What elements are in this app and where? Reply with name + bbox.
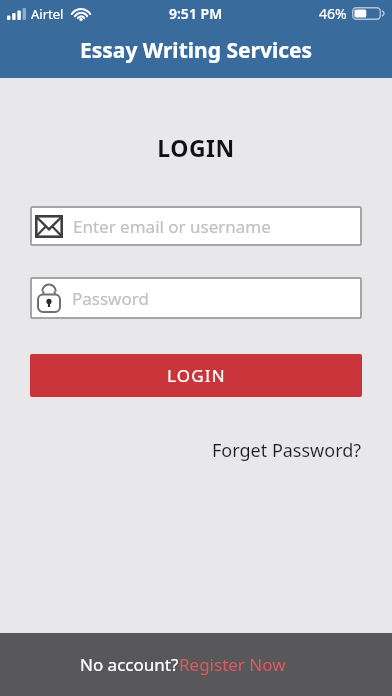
button[interactable]: Password <box>30 277 362 319</box>
staticText: Airtel <box>31 5 64 23</box>
staticText: Forget Password? <box>212 438 362 463</box>
staticText: No account? <box>80 653 179 676</box>
staticText: LOGIN <box>167 364 226 387</box>
button[interactable]: Forget Password? <box>212 438 362 463</box>
button[interactable]: No account? <box>0 633 392 696</box>
button[interactable]: Enter email or username <box>30 206 362 246</box>
button[interactable]: LOGIN <box>30 354 362 397</box>
staticText: LOGIN <box>0 132 392 163</box>
staticText: 9:51 PM <box>169 4 223 23</box>
staticText: Enter email or username <box>73 215 271 238</box>
staticText: Essay Writing Services <box>80 36 313 65</box>
staticText: Password <box>72 287 149 310</box>
staticText: Register Now <box>179 653 286 676</box>
staticText: 46% <box>319 4 347 23</box>
